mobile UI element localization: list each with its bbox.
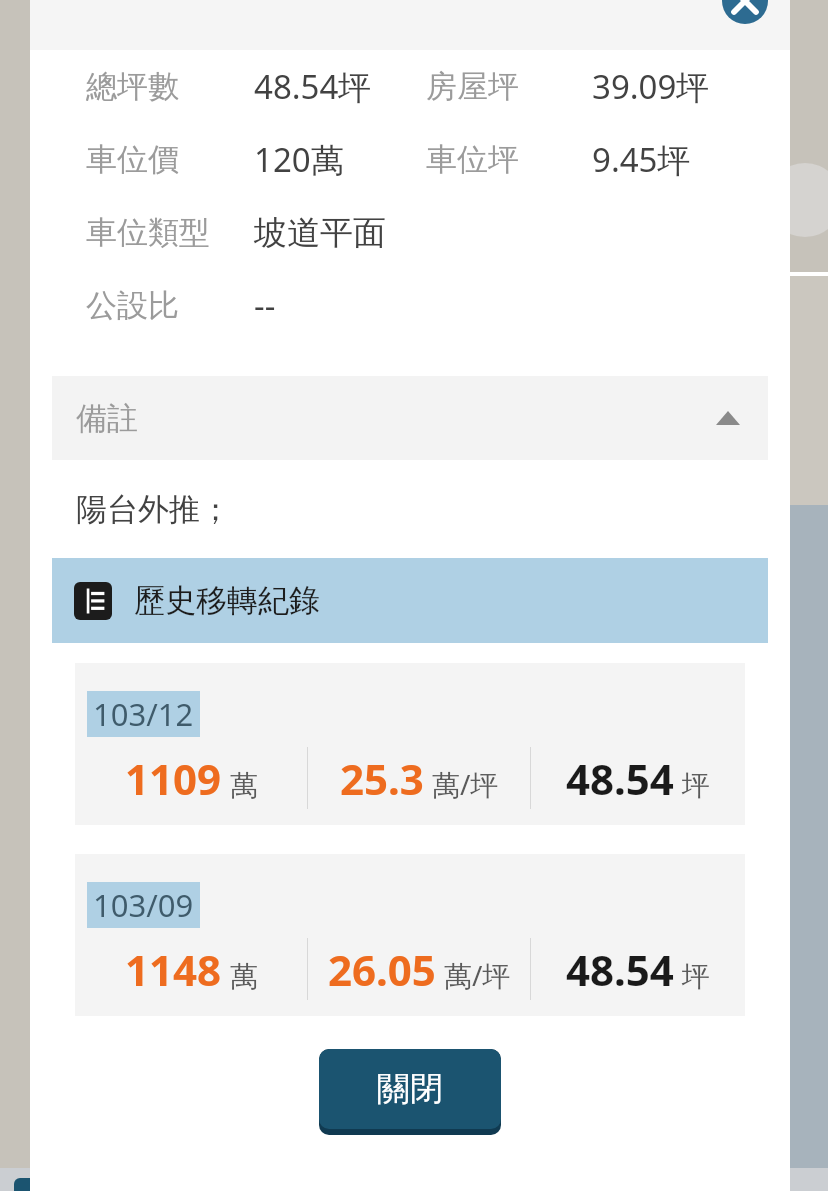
staticText: 歷史移轉紀錄 xyxy=(134,581,320,620)
staticText: 車位坪 xyxy=(426,140,519,179)
staticText: 103/09 xyxy=(93,884,194,926)
staticText: 公設比 xyxy=(86,286,179,325)
button[interactable]: 103/09 xyxy=(75,854,745,1016)
staticText: 關閉 xyxy=(377,1068,443,1110)
staticText: -- xyxy=(254,283,276,328)
staticText: 備註 xyxy=(76,399,138,438)
staticText: 萬/坪 xyxy=(444,956,511,994)
button[interactable]: Close xyxy=(722,0,768,24)
other: Collapse remarks xyxy=(714,404,742,432)
staticText: 萬/坪 xyxy=(432,765,499,803)
staticText: 車位類型 xyxy=(86,213,210,252)
staticText: 坪 xyxy=(682,768,710,803)
staticText: 1148 xyxy=(125,941,222,998)
staticText: 26.05 xyxy=(328,941,436,998)
staticText: 房屋坪 xyxy=(426,67,519,106)
staticText: 39.09坪 xyxy=(592,64,710,109)
staticText: 總坪數 xyxy=(86,67,179,106)
button[interactable]: 歷史移轉紀錄 xyxy=(52,558,768,643)
button[interactable]: 備註 xyxy=(52,376,768,460)
staticText: 萬 xyxy=(230,768,258,803)
staticText: 坡道平面 xyxy=(254,212,386,254)
staticText: 48.54坪 xyxy=(254,64,372,109)
button[interactable]: 103/12 xyxy=(75,663,745,825)
staticText: 萬 xyxy=(230,959,258,994)
staticText: 103/12 xyxy=(93,693,194,735)
staticText: 48.54 xyxy=(566,750,674,807)
staticText: 25.3 xyxy=(340,750,424,807)
staticText: 48.54 xyxy=(566,941,674,998)
staticText: 車位價 xyxy=(86,140,179,179)
button[interactable]: 關閉 xyxy=(319,1049,501,1135)
staticText: 1109 xyxy=(125,750,222,807)
staticText: 陽台外推； xyxy=(76,490,231,529)
staticText: 120萬 xyxy=(254,137,344,182)
staticText: 9.45坪 xyxy=(592,137,691,182)
staticText: 坪 xyxy=(682,959,710,994)
